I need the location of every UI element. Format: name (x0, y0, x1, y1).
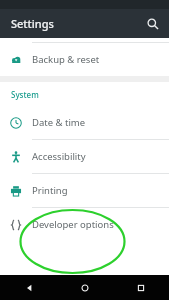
button[interactable]: Back (0, 275, 57, 300)
button[interactable]: Accessibility (0, 140, 169, 173)
staticText: Settings (11, 16, 54, 31)
staticText: Printing (32, 184, 68, 197)
button[interactable]: Backup & reset (0, 43, 169, 76)
staticText: Date & time (32, 116, 86, 129)
staticText: Backup & reset (32, 53, 100, 66)
button[interactable]: Developer options (0, 208, 169, 241)
staticText: Developer options (32, 218, 114, 231)
button[interactable]: Search (143, 14, 163, 34)
button[interactable]: Date & time (0, 106, 169, 139)
staticText: Accessibility (32, 150, 86, 163)
button[interactable]: Printing (0, 174, 169, 207)
button[interactable]: Recents (113, 275, 169, 300)
staticText: System (11, 89, 39, 100)
button[interactable]: Home (57, 275, 113, 300)
